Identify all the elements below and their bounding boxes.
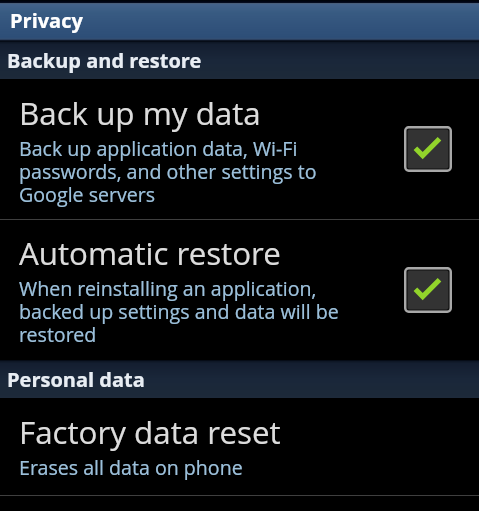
other: Enabled: [404, 126, 452, 172]
staticText: Factory data reset: [19, 416, 281, 452]
button[interactable]: Back up my data: [0, 79, 479, 219]
staticText: Back up application data, Wi-Fi password…: [19, 138, 366, 207]
staticText: Erases all data on phone: [19, 457, 243, 480]
staticText: Privacy: [10, 9, 83, 33]
staticText: When reinstalling an application, backed…: [19, 278, 366, 347]
staticText: Back up my data: [19, 97, 261, 133]
button[interactable]: Factory data reset: [0, 398, 479, 495]
staticText: Automatic restore: [19, 237, 281, 273]
button[interactable]: Automatic restore: [0, 220, 479, 360]
other: Enabled: [404, 267, 452, 313]
staticText: Backup and restore: [7, 49, 202, 73]
staticText: Personal data: [7, 368, 145, 392]
